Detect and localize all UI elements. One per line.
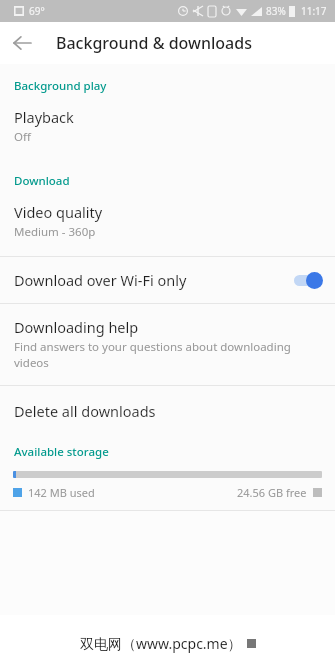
staticText: 69° <box>29 4 45 18</box>
button[interactable]: Playback <box>0 94 335 155</box>
staticText: Playback <box>14 107 74 127</box>
staticText: Off <box>14 129 31 145</box>
button[interactable]: Downloading help <box>0 304 335 381</box>
staticText: Background & downloads <box>56 32 252 54</box>
staticText: 双电网（www.pcpc.me） <box>80 634 242 653</box>
button[interactable]: Back <box>7 28 37 58</box>
staticText: Available storage <box>14 444 109 460</box>
staticText: 83% <box>266 4 286 18</box>
staticText: Video quality <box>14 202 103 222</box>
button[interactable]: Delete all downloads <box>0 386 335 436</box>
staticText: 142 MB used <box>28 485 95 500</box>
button[interactable]: Video quality <box>0 189 335 250</box>
staticText: Delete all downloads <box>14 401 156 421</box>
staticText: Download <box>14 173 70 189</box>
staticText: 24.56 GB free <box>237 485 307 500</box>
button[interactable]: Download over Wi-Fi only <box>0 257 335 303</box>
staticText: Downloading help <box>14 317 139 337</box>
staticText: Download over Wi-Fi only <box>14 270 292 290</box>
staticText: Medium - 360p <box>14 224 96 240</box>
staticText: Background play <box>14 78 107 94</box>
staticText: 11:17 <box>301 4 327 18</box>
staticText: Find answers to your questions about dow… <box>14 339 321 371</box>
